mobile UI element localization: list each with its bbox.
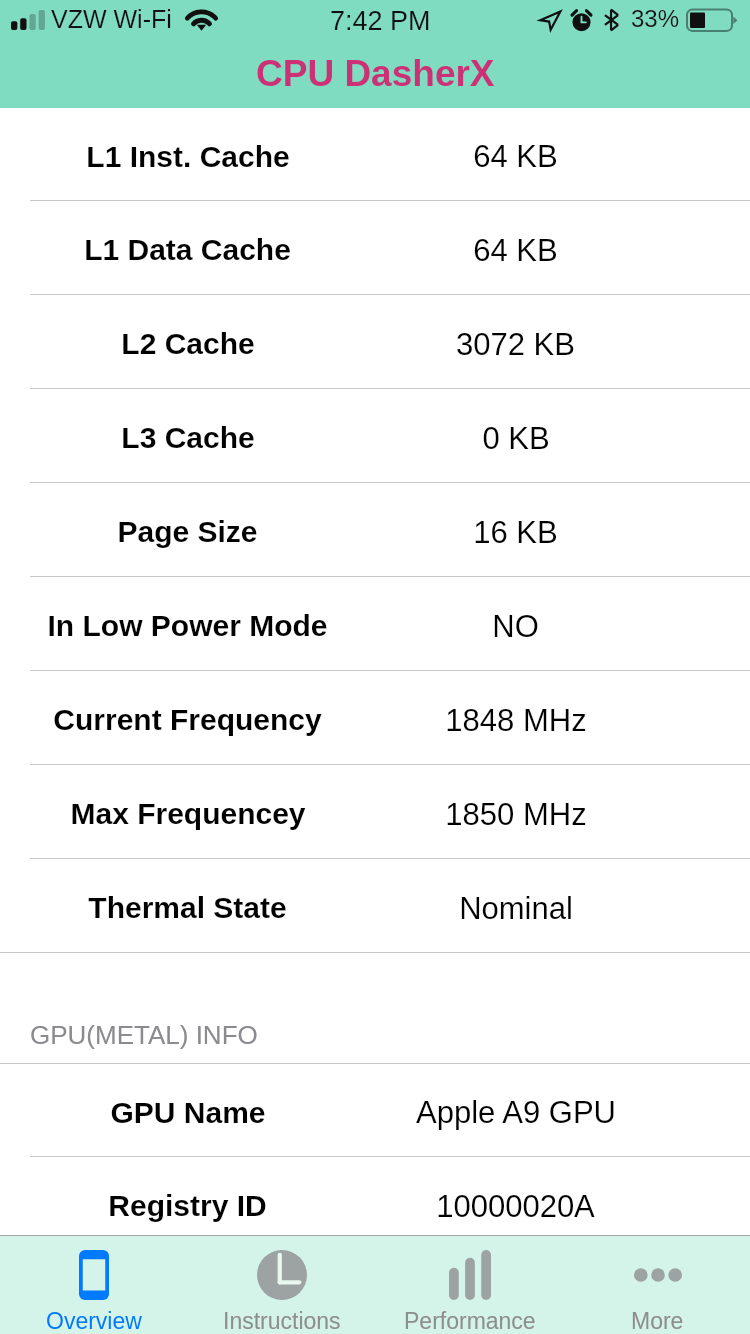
button[interactable]: More — [564, 1236, 750, 1334]
button[interactable]: L2 Cache — [0, 295, 750, 389]
button[interactable]: Instructions — [188, 1236, 376, 1334]
button[interactable]: Performance — [376, 1236, 564, 1334]
staticText: 7:42 PM — [330, 6, 431, 36]
staticText: Overview — [46, 1308, 142, 1334]
staticText: L1 Data Cache — [84, 233, 291, 267]
staticText: Registry ID — [108, 1189, 267, 1223]
button[interactable]: Page Size — [0, 483, 750, 577]
staticText: In Low Power Mode — [47, 609, 328, 643]
staticText: Performance — [404, 1308, 536, 1334]
staticText: Page Size — [117, 515, 258, 549]
staticText: Current Frequency — [53, 703, 322, 737]
staticText: L3 Cache — [121, 421, 255, 455]
staticText: Apple A9 GPU — [416, 1095, 616, 1130]
staticText: NO — [492, 609, 539, 644]
staticText: GPU Name — [110, 1096, 266, 1130]
staticText: Thermal State — [88, 891, 287, 925]
staticText: 64 KB — [473, 139, 558, 174]
button[interactable]: Current Frequency — [0, 671, 750, 765]
staticText: Instructions — [223, 1308, 341, 1334]
staticText: 0 KB — [482, 421, 550, 456]
staticText: 33% — [631, 5, 680, 32]
staticText: 16 KB — [473, 515, 558, 550]
button[interactable]: Overview — [0, 1236, 188, 1334]
staticText: GPU(METAL) INFO — [30, 1020, 258, 1049]
staticText: 1848 MHz — [445, 703, 587, 738]
button[interactable]: Thermal State — [0, 859, 750, 953]
button[interactable]: In Low Power Mode — [0, 577, 750, 671]
staticText: 3072 KB — [456, 327, 575, 362]
staticText: 1850 MHz — [445, 797, 587, 832]
staticText: L2 Cache — [121, 327, 255, 361]
staticText: Max Frequencey — [70, 797, 306, 831]
button[interactable]: L1 Data Cache — [0, 201, 750, 295]
button[interactable]: GPU Name — [0, 1064, 750, 1157]
staticText: Nominal — [459, 891, 573, 926]
staticText: More — [631, 1308, 684, 1334]
staticText: L1 Inst. Cache — [86, 140, 290, 174]
button[interactable]: Max Frequencey — [0, 765, 750, 859]
staticText: 10000020A — [436, 1189, 595, 1224]
button[interactable]: L3 Cache — [0, 389, 750, 483]
staticText: CPU DasherX — [256, 53, 495, 94]
button[interactable]: L1 Inst. Cache — [0, 108, 750, 201]
button[interactable]: Registry ID — [0, 1157, 750, 1251]
staticText: 64 KB — [473, 233, 558, 268]
staticText: VZW Wi-Fi — [51, 5, 172, 33]
